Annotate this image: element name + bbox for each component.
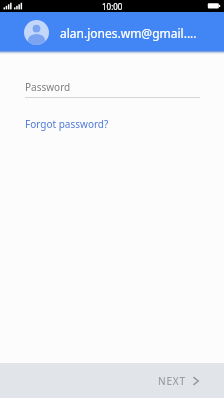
staticText: Password xyxy=(25,80,71,94)
button[interactable]: Account xyxy=(24,20,49,45)
button[interactable]: Password xyxy=(0,80,224,98)
staticText: Forgot password? xyxy=(25,117,109,131)
button[interactable]: NEXT xyxy=(150,367,208,395)
staticText: alan.jones.wm@gmail.... xyxy=(60,25,197,41)
button[interactable]: Forgot password? xyxy=(21,114,113,134)
staticText: 10:00 xyxy=(102,1,123,12)
staticText: NEXT xyxy=(158,374,186,388)
